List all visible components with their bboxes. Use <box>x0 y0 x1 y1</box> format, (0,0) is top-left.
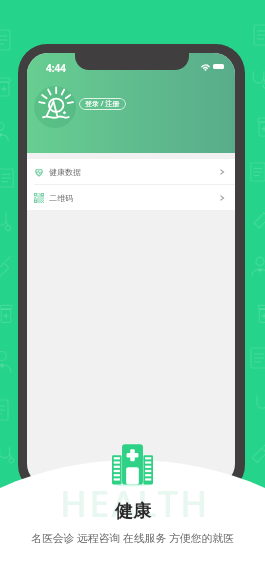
staticText: 二维码 <box>49 193 73 203</box>
button[interactable]: 登录 / 注册 <box>79 98 126 110</box>
button[interactable]: 二维码 <box>27 185 235 210</box>
staticText: 健康数据 <box>49 167 81 177</box>
button[interactable]: Avatar <box>34 86 76 128</box>
staticText: 健康 <box>115 500 151 523</box>
staticText: 名医会诊 远程咨询 在线服务 方便您的就医 <box>31 530 234 545</box>
button[interactable]: 健康数据 <box>27 159 235 184</box>
staticText: 登录 / 注册 <box>85 99 120 109</box>
staticText: 4:44 <box>46 61 66 75</box>
staticText: HEALTH <box>60 479 210 528</box>
